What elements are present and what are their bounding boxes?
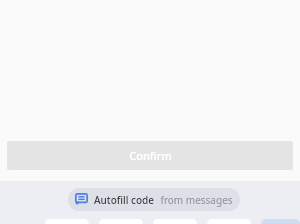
button[interactable]: Key <box>153 219 197 224</box>
button[interactable]: Key <box>207 219 251 224</box>
staticText: Autofill code <box>94 193 154 207</box>
button[interactable]: Key <box>45 219 89 224</box>
other: Messages <box>75 193 88 206</box>
staticText: from messages <box>160 193 233 207</box>
staticText: Confirm <box>129 148 172 163</box>
button[interactable]: Confirm <box>7 141 293 170</box>
button[interactable]: Key <box>261 219 300 224</box>
button[interactable]: Messages <box>68 188 240 211</box>
button[interactable]: Key <box>99 219 143 224</box>
